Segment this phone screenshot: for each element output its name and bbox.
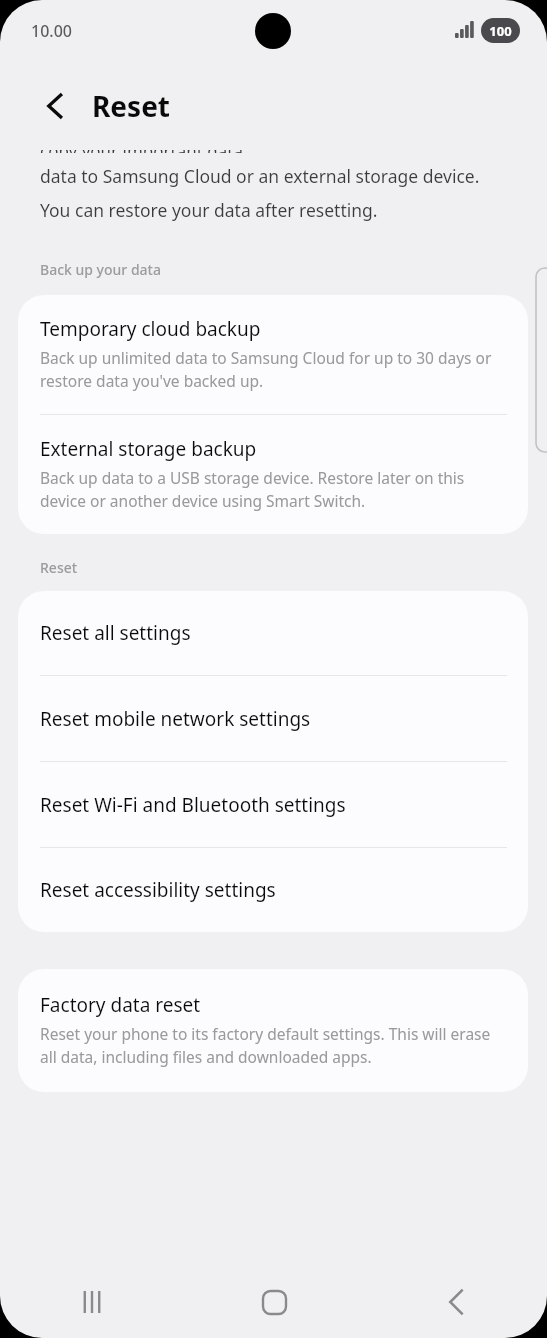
staticText: 10.00 — [31, 20, 72, 42]
button[interactable]: Home — [183, 1266, 365, 1338]
button[interactable]: Reset accessibility settings — [18, 848, 528, 932]
staticText: Back up data to a USB storage device. Re… — [40, 467, 510, 512]
button[interactable]: Back — [30, 81, 80, 131]
staticText: Back up your data — [40, 260, 161, 279]
button[interactable]: Temporary cloud backup — [18, 295, 528, 414]
staticText: External storage backup — [40, 436, 257, 462]
staticText: Reset mobile network settings — [40, 706, 311, 732]
staticText: Reset your phone to its factory default … — [40, 1023, 510, 1068]
button[interactable]: Reset Wi-Fi and Bluetooth settings — [18, 762, 528, 847]
button[interactable]: Reset mobile network settings — [18, 676, 528, 761]
staticText: copy your important data — [40, 150, 243, 153]
button[interactable]: External storage backup — [18, 415, 528, 534]
staticText: Reset accessibility settings — [40, 877, 276, 903]
staticText: Reset all settings — [40, 620, 191, 646]
button[interactable]: Factory data reset — [18, 969, 528, 1092]
staticText: Reset — [92, 87, 171, 125]
staticText: data to Samsung Cloud or an external sto… — [40, 164, 497, 223]
staticText: 100 — [489, 22, 512, 40]
button[interactable]: Recent apps — [0, 1266, 183, 1338]
staticText: Factory data reset — [40, 992, 201, 1018]
button[interactable]: Back — [365, 1266, 547, 1338]
staticText: Reset Wi-Fi and Bluetooth settings — [40, 792, 346, 818]
staticText: Temporary cloud backup — [40, 316, 261, 342]
staticText: Back up unlimited data to Samsung Cloud … — [40, 347, 510, 392]
staticText: Reset — [40, 558, 78, 577]
button[interactable]: Reset all settings — [18, 591, 528, 675]
